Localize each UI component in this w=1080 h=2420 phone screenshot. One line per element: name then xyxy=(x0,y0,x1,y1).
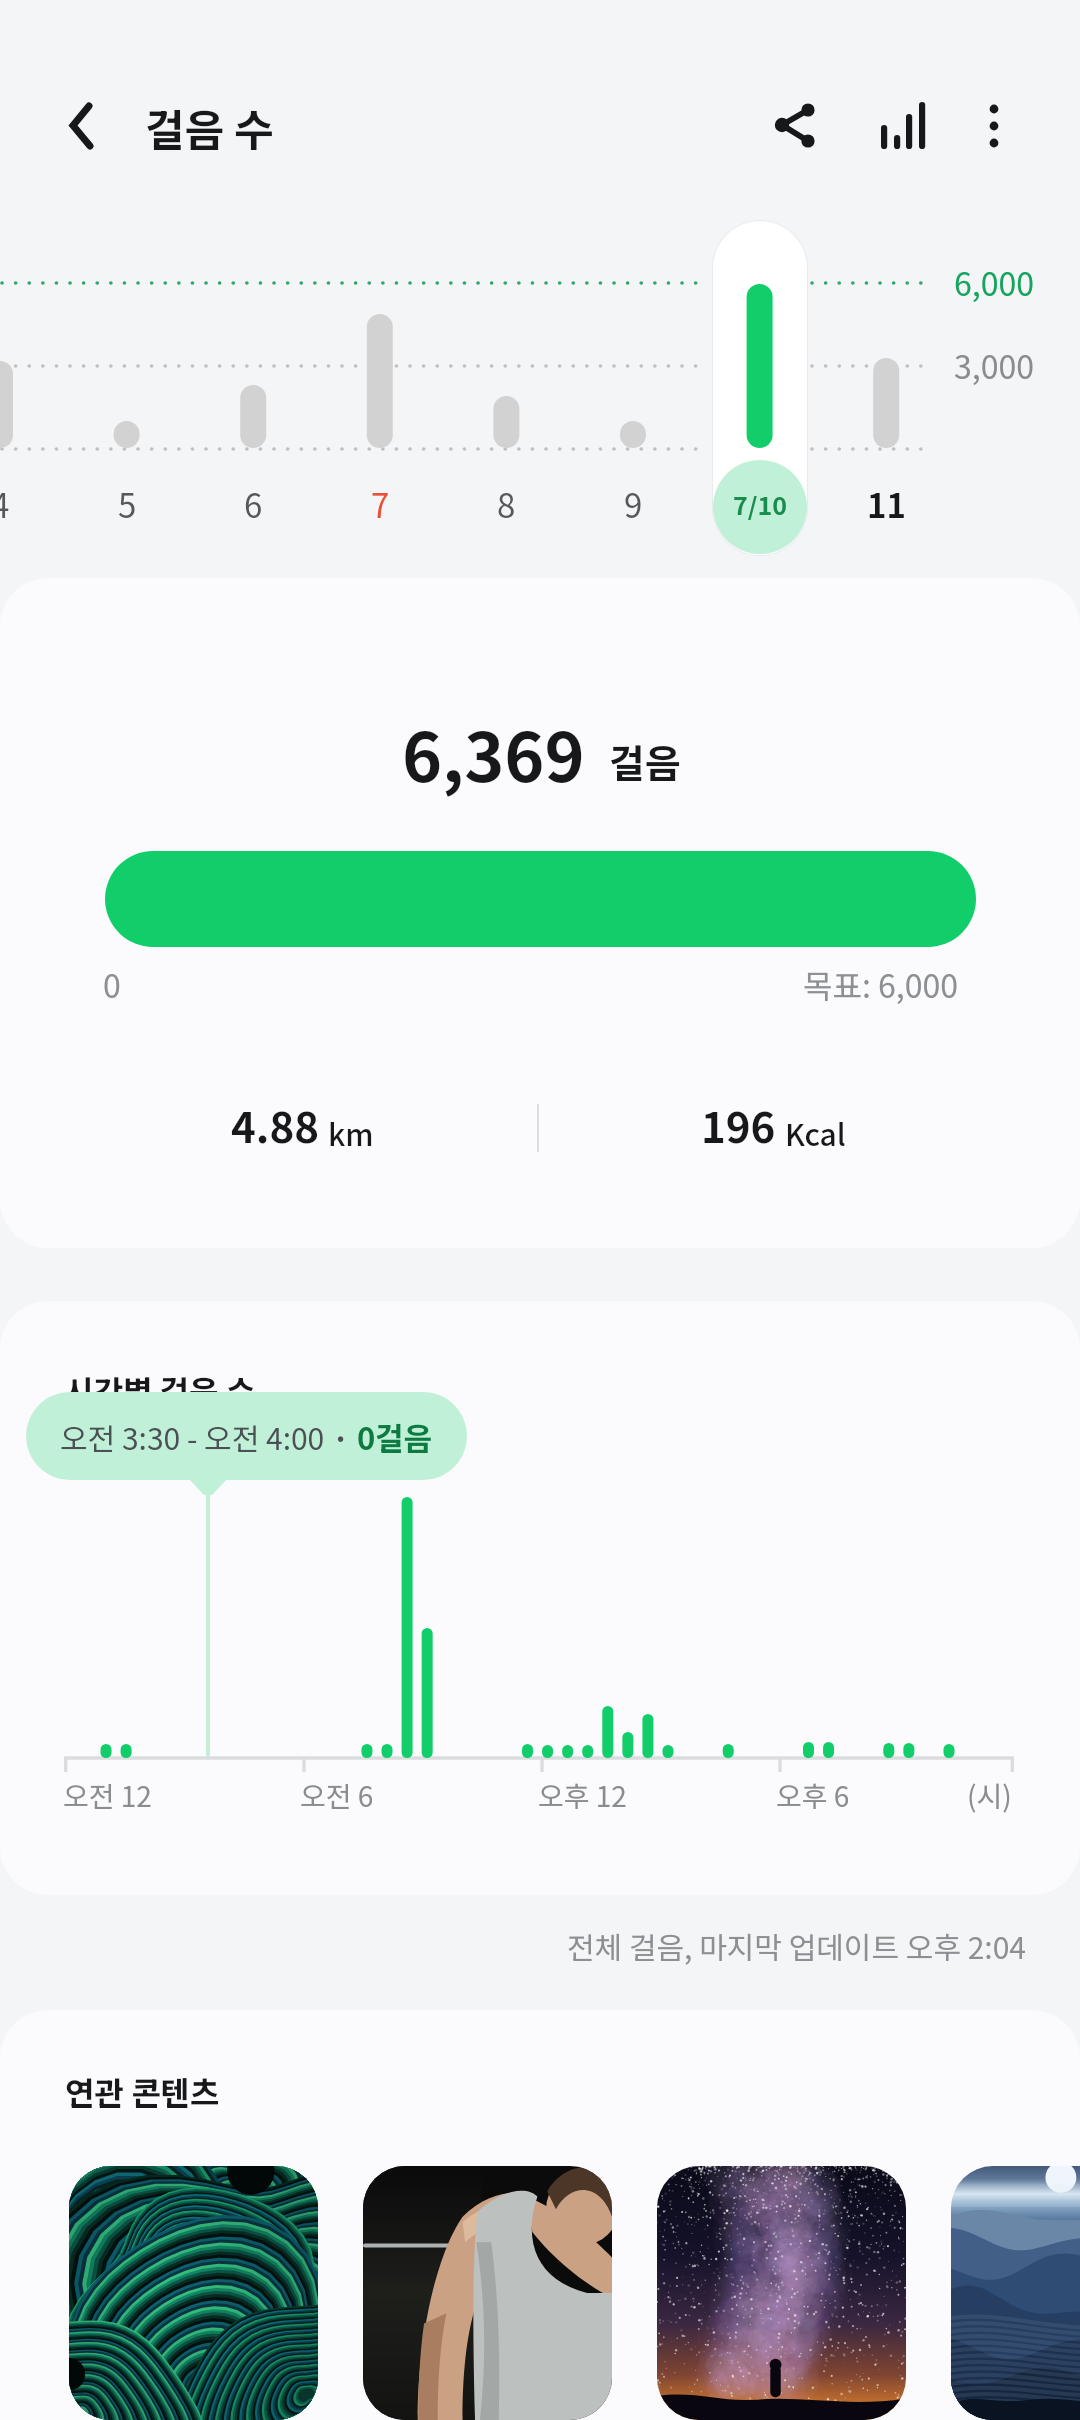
staticText: 5 xyxy=(118,480,137,528)
staticText: 8 xyxy=(497,480,516,528)
staticText: 9 xyxy=(624,480,643,528)
staticText: 걸음 xyxy=(609,733,681,789)
staticText: 11 xyxy=(867,480,906,528)
staticText: 0 xyxy=(103,961,121,1007)
staticText: 시간별 걸음 수 xyxy=(64,1367,256,1413)
staticText: 7/10 xyxy=(733,486,787,522)
staticText: (시) xyxy=(967,1775,1012,1816)
button[interactable]: 6,369 xyxy=(0,578,1080,1248)
button[interactable]: 9 xyxy=(570,476,696,532)
staticText: 목표: 6,000 xyxy=(788,961,958,1007)
staticText: 전체 걸음, 마지막 업데이트 오후 2:04 xyxy=(560,1924,1026,1967)
staticText: 4 xyxy=(0,480,10,528)
staticText: 오전 6 xyxy=(300,1775,374,1816)
staticText: 연관 콘텐츠 xyxy=(65,2068,220,2114)
button[interactable]: 4 xyxy=(0,476,63,532)
button[interactable]: Chart view xyxy=(860,78,956,174)
button[interactable]: 7/10 xyxy=(697,476,823,532)
button[interactable]: 8 xyxy=(443,476,569,532)
button[interactable]: Back xyxy=(36,92,104,160)
staticText: Kcal xyxy=(785,1111,846,1154)
button[interactable]: Related content 1 xyxy=(363,2166,612,2420)
staticText: 3,000 xyxy=(954,342,1034,388)
button[interactable]: 7 xyxy=(317,476,443,532)
staticText: 0걸음 xyxy=(357,1414,433,1459)
button[interactable]: Related content 2 xyxy=(657,2166,906,2420)
button[interactable]: Related content 3 xyxy=(951,2166,1080,2420)
button[interactable]: 5 xyxy=(64,476,190,532)
staticText: 196 xyxy=(701,1094,776,1155)
staticText: 오전 3:30 - 오전 4:00 xyxy=(60,1415,325,1458)
button[interactable]: Related content 0 xyxy=(69,2166,318,2420)
button[interactable]: Share xyxy=(760,78,856,174)
staticText: 오전 12 xyxy=(63,1775,152,1816)
staticText: km xyxy=(328,1111,374,1154)
staticText: 6,369 xyxy=(402,703,585,801)
staticText: 6,000 xyxy=(954,259,1034,305)
staticText: 4.88 xyxy=(231,1094,319,1155)
button[interactable]: 6 xyxy=(190,476,316,532)
staticText: 걸음 수 xyxy=(145,96,274,158)
staticText: 7 xyxy=(371,480,390,528)
staticText: · xyxy=(325,1415,357,1458)
staticText: 오후 6 xyxy=(776,1775,850,1816)
button[interactable]: More options xyxy=(950,78,1042,170)
staticText: 6 xyxy=(244,480,263,528)
button[interactable]: 11 xyxy=(823,476,949,532)
staticText: 오후 12 xyxy=(538,1775,627,1816)
